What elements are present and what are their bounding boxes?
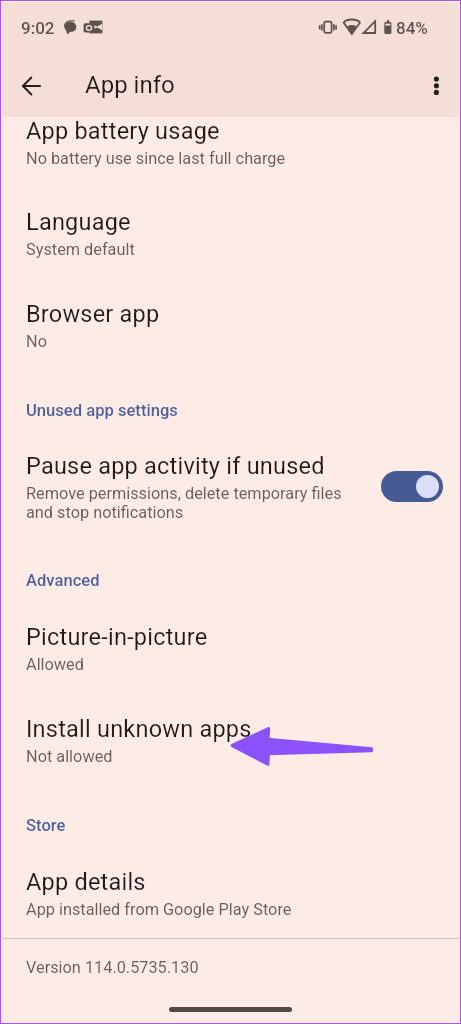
staticText: No bbox=[26, 332, 47, 351]
button[interactable]: Install unknown apps bbox=[0, 701, 461, 793]
button[interactable]: Pause app activity if unused bbox=[381, 471, 443, 502]
button[interactable]: App battery usage bbox=[0, 103, 461, 180]
staticText: 9:02 bbox=[21, 18, 55, 38]
staticText: App details bbox=[26, 868, 146, 896]
staticText: No battery use since last full charge bbox=[26, 149, 286, 168]
staticText: App battery usage bbox=[26, 117, 220, 145]
button[interactable]: Browser app bbox=[0, 286, 461, 378]
button[interactable]: Pause app activity if unused bbox=[0, 438, 461, 534]
staticText: Store bbox=[26, 816, 66, 835]
staticText: System default bbox=[26, 240, 135, 259]
staticText: Allowed bbox=[26, 655, 84, 674]
staticText: Advanced bbox=[26, 571, 100, 590]
staticText: 84% bbox=[396, 18, 428, 38]
button[interactable]: App details bbox=[0, 854, 461, 938]
button[interactable]: Back bbox=[9, 64, 53, 108]
button[interactable]: Picture-in-picture bbox=[0, 609, 461, 701]
button[interactable]: Language bbox=[0, 194, 461, 286]
staticText: Remove permissions, delete temporary fil… bbox=[26, 484, 361, 522]
staticText: Version 114.0.5735.130 bbox=[26, 958, 199, 977]
staticText: App installed from Google Play Store bbox=[26, 900, 292, 919]
staticText: Install unknown apps bbox=[26, 715, 252, 743]
staticText: Picture-in-picture bbox=[26, 623, 208, 651]
staticText: App info bbox=[85, 71, 175, 99]
button[interactable]: More options bbox=[418, 68, 454, 104]
staticText: Pause app activity if unused bbox=[26, 452, 325, 480]
staticText: Not allowed bbox=[26, 747, 113, 766]
staticText: Browser app bbox=[26, 300, 160, 328]
staticText: Language bbox=[26, 208, 131, 236]
staticText: Unused app settings bbox=[26, 401, 178, 420]
